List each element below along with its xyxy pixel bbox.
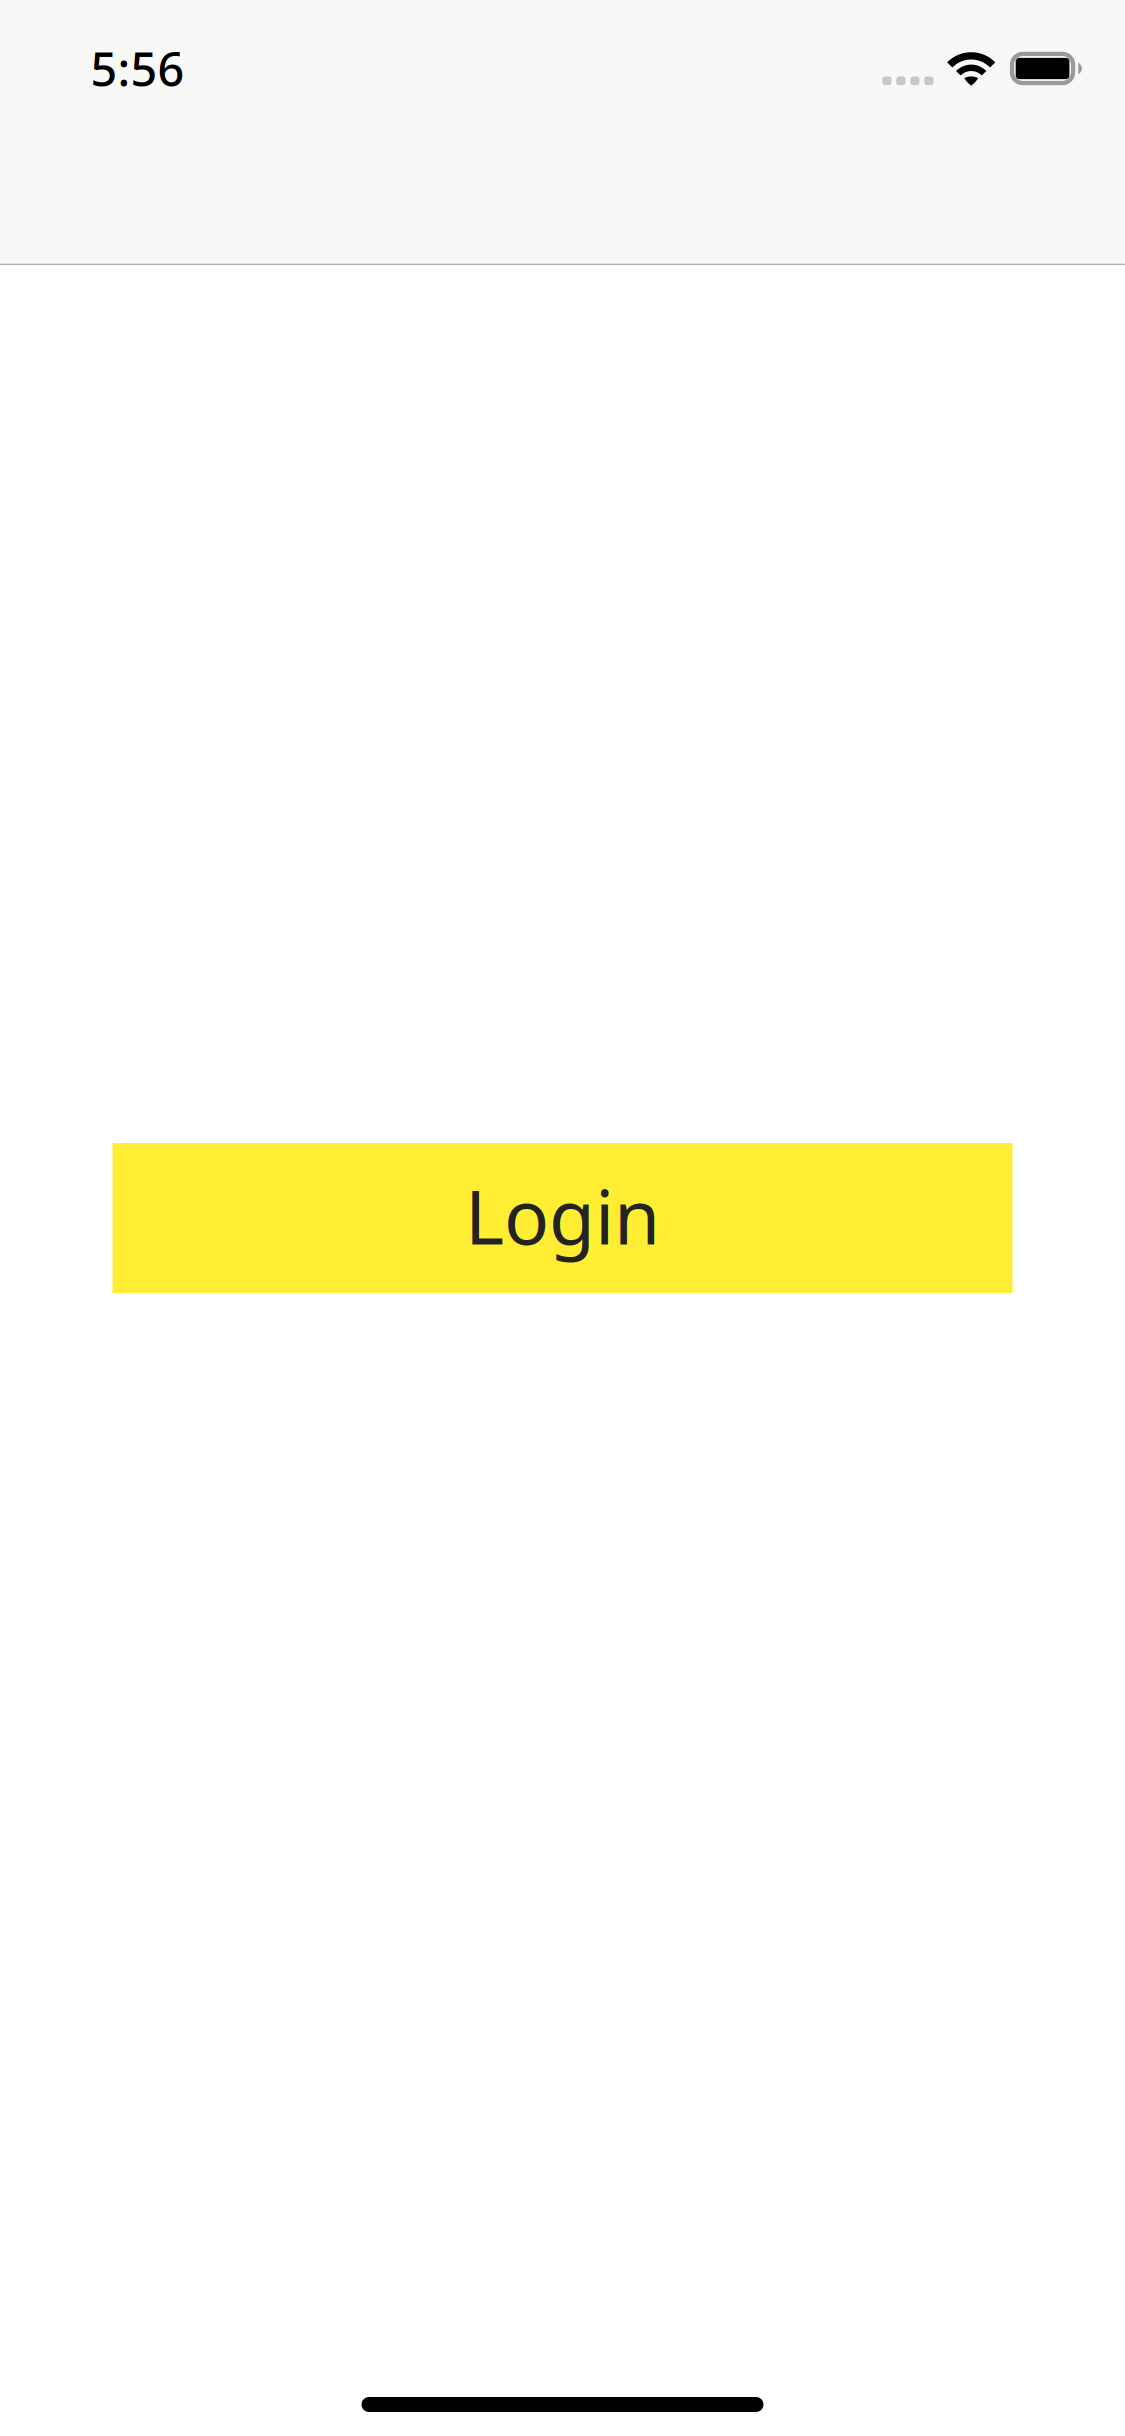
staticText: 5:56 [90,37,184,99]
button[interactable]: Login [112,1143,1012,1293]
staticText: Login [465,1166,660,1265]
